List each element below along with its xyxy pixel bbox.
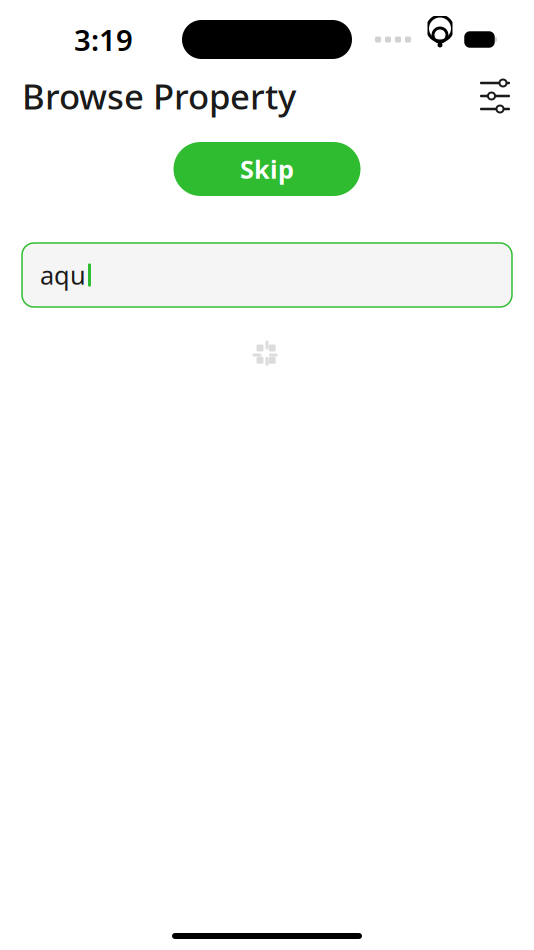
button[interactable]: Skip bbox=[173, 142, 360, 196]
staticText: 3:19 bbox=[74, 20, 133, 59]
staticText: aqu bbox=[40, 258, 86, 292]
staticText: Skip bbox=[240, 152, 294, 186]
button[interactable]: Filter bbox=[478, 81, 534, 111]
staticText: Browse Property bbox=[22, 73, 296, 119]
